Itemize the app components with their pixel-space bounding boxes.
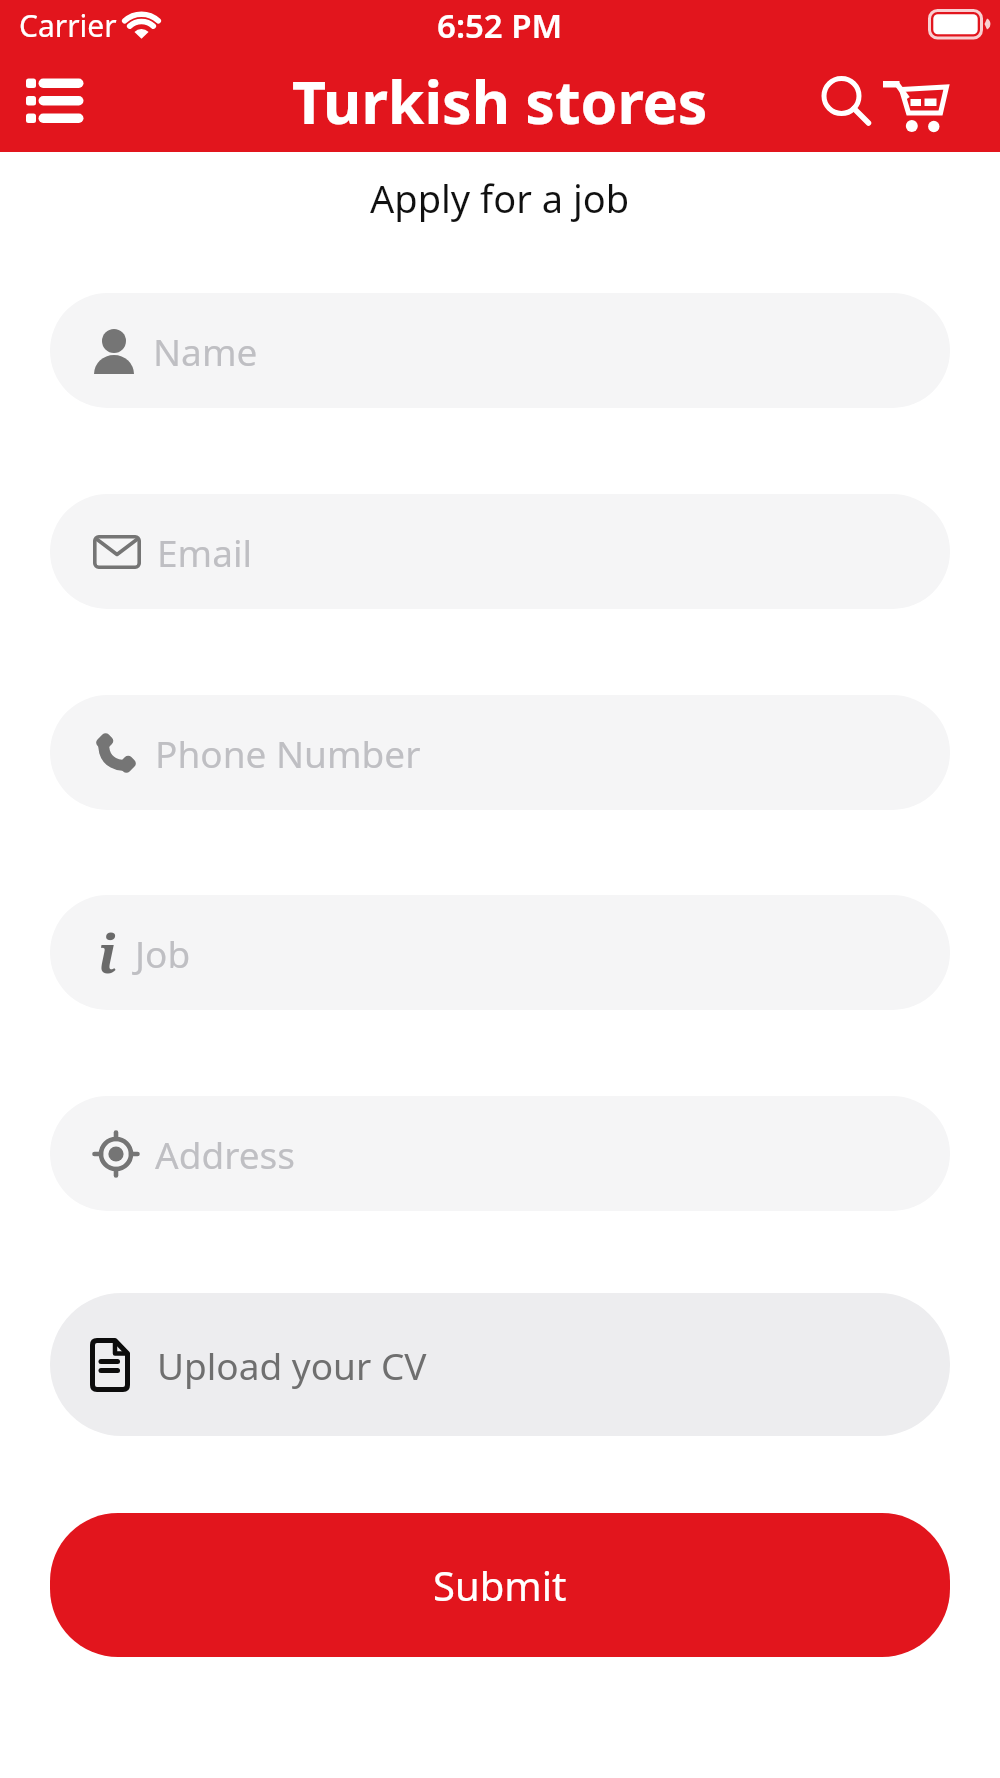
staticText: i [98, 917, 117, 988]
button[interactable]: Address [50, 1096, 950, 1211]
staticText: Email [157, 527, 253, 577]
button[interactable] [26, 78, 84, 124]
button[interactable]: Name [50, 293, 950, 408]
staticText: Apply for a job [370, 172, 630, 224]
staticText: 6:52 PM [437, 3, 563, 48]
staticText: Job [135, 928, 191, 978]
button[interactable]: Phone Number [50, 695, 950, 810]
staticText: Carrier [19, 5, 117, 46]
button[interactable]: i [50, 895, 950, 1010]
button[interactable]: Submit [50, 1513, 950, 1657]
staticText: Name [153, 326, 258, 376]
staticText: Upload your CV [157, 1340, 427, 1390]
staticText: Turkish stores [292, 61, 708, 141]
staticText: Address [155, 1129, 296, 1179]
button[interactable] [880, 73, 950, 129]
staticText: Submit [433, 1558, 567, 1612]
button[interactable]: Email [50, 494, 950, 609]
button[interactable] [820, 75, 864, 127]
staticText: Phone Number [155, 728, 421, 778]
button[interactable]: Upload your CV [50, 1293, 950, 1436]
